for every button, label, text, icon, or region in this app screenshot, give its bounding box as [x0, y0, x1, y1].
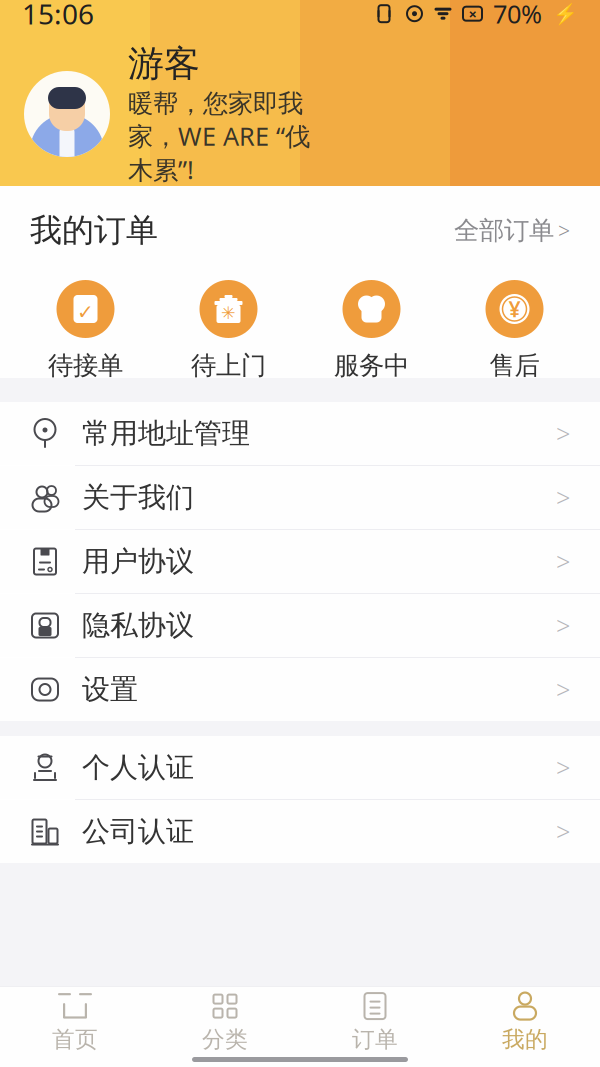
staticText: 全部订单	[454, 215, 554, 246]
staticText: 70%	[493, 0, 542, 30]
staticText: ¥	[508, 295, 520, 323]
button[interactable]: 分类	[150, 985, 300, 1059]
staticText: >	[556, 673, 570, 706]
button[interactable]: 我的	[450, 985, 600, 1059]
staticText: ⚡	[553, 2, 578, 25]
staticText: ✓	[77, 301, 94, 323]
staticText: 15:06	[22, 0, 94, 32]
button[interactable]: 首页	[0, 985, 150, 1059]
staticText: >	[556, 751, 570, 784]
staticText: 常用地址管理	[82, 416, 250, 451]
button[interactable]: ✓	[14, 276, 157, 385]
staticText: 待接单	[48, 350, 123, 381]
button[interactable]: ✳	[157, 276, 300, 385]
button[interactable]: 服务中	[300, 276, 443, 385]
button[interactable]: 隐私协议	[0, 594, 600, 658]
staticText: >	[556, 417, 570, 450]
staticText: 个人认证	[82, 750, 194, 785]
button[interactable]: ¥	[443, 276, 586, 385]
staticText: ✳	[221, 303, 236, 323]
staticText: 公司认证	[82, 814, 194, 849]
staticText: 设置	[82, 672, 138, 707]
staticText: >	[556, 815, 570, 848]
staticText: 用户协议	[82, 544, 194, 579]
button[interactable]: 设置	[0, 658, 600, 721]
staticText: 服务中	[334, 350, 409, 381]
staticText: >	[556, 609, 570, 642]
staticText: >	[556, 545, 570, 578]
staticText: >	[556, 481, 570, 514]
button[interactable]: 公司认证	[0, 800, 600, 863]
staticText: ×	[468, 4, 476, 23]
staticText: 游客	[128, 42, 200, 86]
button[interactable]: 关于我们	[0, 466, 600, 530]
staticText: 我的	[502, 1026, 548, 1053]
staticText: 暖帮，您家即我家，WE ARE “伐木累”!	[128, 88, 310, 186]
button[interactable]: 用户协议	[0, 530, 600, 594]
staticText: 我的订单	[30, 211, 158, 250]
button[interactable]: 全部订单	[444, 209, 570, 252]
button[interactable]: 订单	[300, 985, 450, 1059]
staticText: 首页	[52, 1026, 98, 1053]
staticText: 售后	[489, 350, 539, 381]
staticText: >	[558, 216, 570, 245]
staticText: 隐私协议	[82, 608, 194, 643]
staticText: 待上门	[191, 350, 266, 381]
staticText: 订单	[352, 1026, 398, 1053]
button[interactable]: 个人认证	[0, 736, 600, 800]
staticText: 关于我们	[82, 480, 194, 515]
staticText: 分类	[202, 1026, 248, 1053]
button[interactable]: 常用地址管理	[0, 402, 600, 466]
